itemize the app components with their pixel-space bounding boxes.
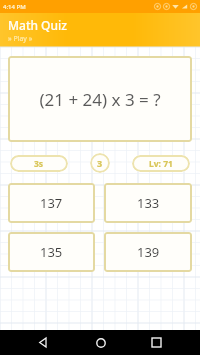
button[interactable]: 139 <box>104 232 192 272</box>
staticText: 133 <box>137 194 160 212</box>
button[interactable]: Recent apps <box>144 330 169 355</box>
staticText: 4:14 PM <box>3 3 26 11</box>
staticText: 139 <box>137 243 160 261</box>
button[interactable]: Lv: 71 <box>132 155 190 172</box>
button[interactable]: 3 <box>90 153 110 173</box>
staticText: 137 <box>40 194 63 212</box>
button[interactable]: Home <box>88 330 113 355</box>
staticText: 3 <box>97 157 103 169</box>
button[interactable]: 137 <box>8 183 95 223</box>
button[interactable]: 135 <box>8 232 95 272</box>
staticText: 3s <box>34 158 44 170</box>
staticText: Math Quiz <box>8 17 68 33</box>
button[interactable]: 3s <box>10 155 68 172</box>
staticText: (21 + 24) x 3 = ? <box>39 88 161 111</box>
staticText: » Play » <box>8 34 33 44</box>
button[interactable]: 133 <box>104 183 192 223</box>
button[interactable]: Back <box>31 330 56 355</box>
staticText: Lv: 71 <box>149 158 173 170</box>
staticText: 135 <box>40 243 63 261</box>
